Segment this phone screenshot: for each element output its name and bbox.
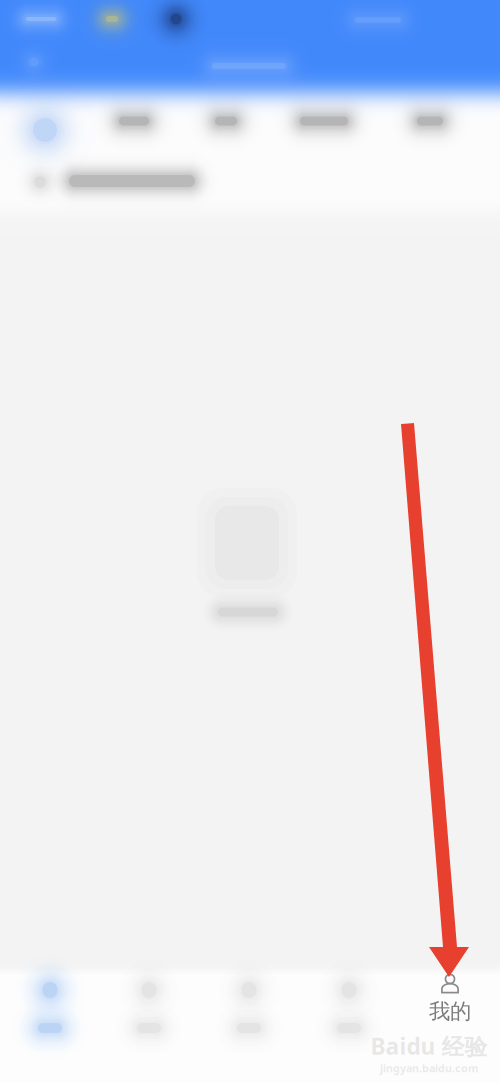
staticText: 我的 [429, 998, 471, 1025]
button[interactable]: Tab [299, 965, 399, 1055]
staticText: Baidu 经验 [370, 1031, 487, 1061]
button[interactable]: Tab [199, 965, 299, 1055]
staticText: jingyan.baidu.com [380, 1061, 478, 1075]
button[interactable]: Tab [0, 965, 100, 1055]
button[interactable]: 我的 [400, 968, 500, 1030]
button[interactable]: Tab [99, 965, 199, 1055]
